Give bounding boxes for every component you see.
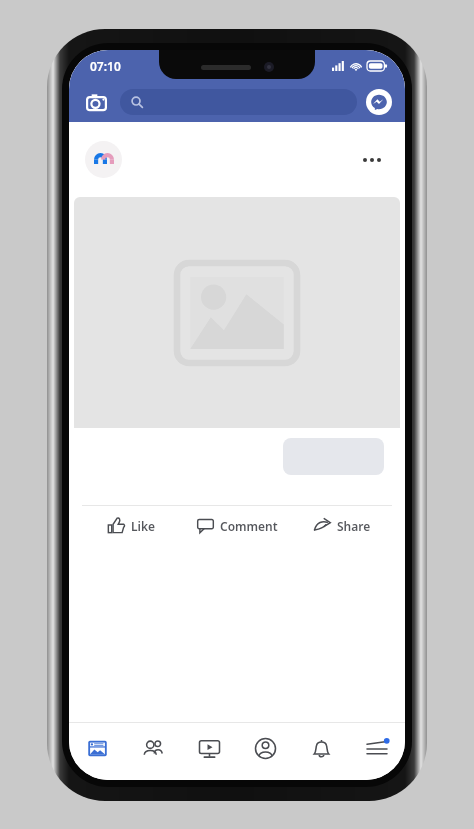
- button[interactable]: Notifications: [293, 723, 349, 773]
- staticText: Like: [131, 518, 156, 534]
- button[interactable]: Menu: [349, 723, 405, 773]
- button[interactable]: Profile picture: [85, 141, 122, 178]
- button[interactable]: Watch: [181, 723, 237, 773]
- button[interactable]: Share: [290, 506, 395, 545]
- button[interactable]: Messenger: [366, 89, 392, 115]
- button[interactable]: News Feed: [69, 723, 125, 773]
- button[interactable]: More options: [355, 147, 389, 173]
- button[interactable]: Friends: [125, 723, 181, 773]
- button[interactable]: Search: [120, 89, 357, 115]
- staticText: Comment: [220, 518, 278, 534]
- button[interactable]: Comment: [185, 506, 290, 545]
- staticText: Share: [337, 518, 371, 534]
- staticText: 07:10: [90, 58, 121, 74]
- button[interactable]: Camera: [82, 88, 110, 116]
- button[interactable]: Like: [79, 506, 185, 545]
- button[interactable]: Profile: [237, 723, 293, 773]
- button[interactable]: Post image: [74, 197, 400, 428]
